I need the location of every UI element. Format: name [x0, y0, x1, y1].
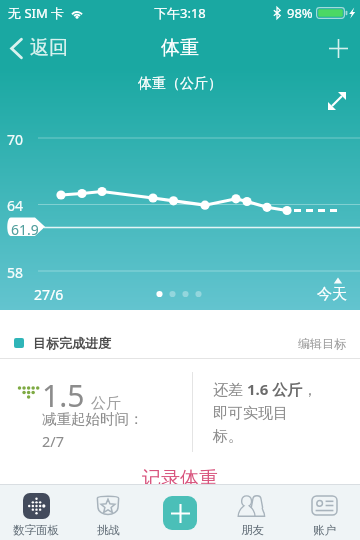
staticText: 朋友 — [241, 523, 264, 537]
staticText: 编辑目标 — [298, 336, 346, 351]
button[interactable]: 记录体重 — [142, 467, 218, 491]
staticText: 1.5 — [42, 375, 85, 416]
button[interactable]: 朋友 — [216, 485, 288, 540]
staticText: 公斤 — [91, 394, 121, 413]
button[interactable]: 目标完成进度 — [0, 331, 360, 355]
staticText: 下午3:18 — [154, 4, 206, 22]
staticText: 2/7 — [42, 431, 64, 451]
staticText: 数字面板 — [13, 523, 59, 537]
staticText: 98% — [287, 4, 313, 22]
staticText: 61.9 — [11, 220, 39, 239]
staticText: 减重起始时间： — [42, 410, 144, 428]
staticText: 账户 — [313, 523, 336, 537]
button[interactable]: 返回 — [0, 28, 78, 68]
staticText: 挑战 — [97, 523, 120, 537]
staticText: 无 SIM 卡 — [8, 4, 65, 22]
staticText: 64 — [7, 196, 24, 215]
button[interactable]: 挑战 — [72, 485, 144, 540]
button[interactable]: 数字面板 — [0, 485, 72, 540]
staticText: 体重 — [161, 36, 199, 60]
staticText: 今天 — [317, 285, 347, 304]
staticText: 返回 — [30, 36, 68, 60]
button[interactable]: 账户 — [288, 485, 360, 540]
staticText: 目标完成进度 — [33, 335, 111, 351]
button[interactable]: Log — [144, 485, 216, 540]
staticText: 27/6 — [34, 285, 64, 304]
staticText: 体重（公斤） — [138, 75, 222, 93]
staticText: 70 — [7, 130, 24, 149]
staticText: 58 — [7, 263, 24, 282]
staticText: 还差 1.6 公斤， 即可实现目 标。 — [213, 379, 318, 445]
button[interactable]: Expand chart — [324, 88, 350, 114]
button[interactable]: Add — [316, 26, 360, 70]
